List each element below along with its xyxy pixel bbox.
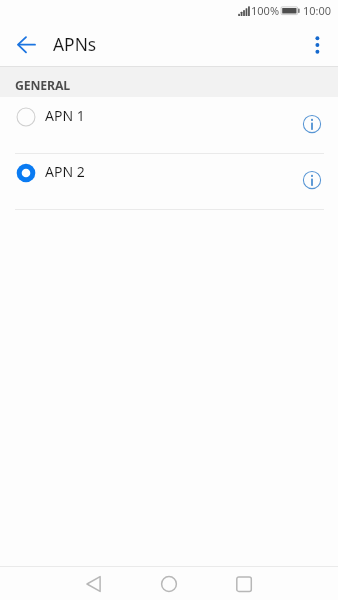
button[interactable]: More options	[294, 22, 338, 66]
staticText: APN 2	[45, 162, 85, 181]
button[interactable]: APN details	[290, 102, 334, 146]
button[interactable]: Back	[0, 22, 44, 66]
staticText: 10:00	[303, 3, 332, 18]
staticText: 100%	[251, 3, 280, 18]
staticText: GENERAL	[15, 77, 71, 94]
button[interactable]: Recents	[208, 567, 280, 600]
staticText: APN 1	[45, 106, 85, 125]
button[interactable]: APN 1	[0, 97, 338, 153]
button[interactable]: APN details	[290, 158, 334, 202]
staticText: APNs	[53, 32, 97, 56]
button[interactable]: APN 2	[0, 153, 338, 209]
button[interactable]: Back	[58, 567, 130, 600]
button[interactable]: Home	[133, 567, 205, 600]
